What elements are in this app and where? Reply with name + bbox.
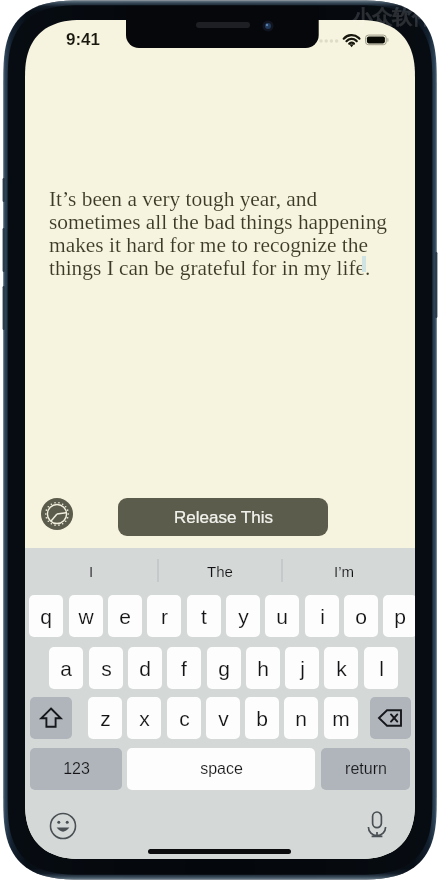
- staticText: It’s been a very tough year, and sometim…: [49, 187, 391, 280]
- button[interactable]: e: [108, 595, 142, 637]
- button[interactable]: b: [245, 697, 279, 739]
- button[interactable]: t: [187, 595, 221, 637]
- staticText: i: [320, 605, 325, 628]
- staticText: y: [238, 605, 249, 628]
- staticText: j: [300, 657, 305, 680]
- staticText: 123: [63, 760, 90, 778]
- staticText: p: [394, 605, 406, 628]
- button[interactable]: v: [206, 697, 240, 739]
- staticText: e: [119, 605, 131, 628]
- staticText: t: [201, 605, 207, 628]
- button[interactable]: Shift: [30, 697, 72, 739]
- button[interactable]: Release This: [118, 498, 328, 536]
- staticText: m: [332, 707, 350, 730]
- staticText: space: [200, 760, 243, 778]
- button[interactable]: I: [46, 550, 136, 592]
- button[interactable]: h: [246, 647, 280, 689]
- staticText: h: [257, 657, 269, 680]
- staticText: c: [179, 707, 190, 730]
- button[interactable]: Dictation: [361, 808, 393, 840]
- staticText: v: [218, 707, 229, 730]
- button[interactable]: y: [226, 595, 260, 637]
- staticText: 小众软件: [352, 5, 432, 30]
- staticText: The: [207, 563, 233, 580]
- staticText: q: [40, 605, 52, 628]
- staticText: Release This: [174, 508, 273, 527]
- button[interactable]: k: [324, 647, 358, 689]
- button[interactable]: s: [89, 647, 123, 689]
- button[interactable]: Settings: [41, 498, 73, 530]
- staticText: n: [295, 707, 307, 730]
- button[interactable]: Backspace: [370, 697, 411, 739]
- button[interactable]: d: [128, 647, 162, 689]
- button[interactable]: m: [324, 697, 358, 739]
- button[interactable]: c: [167, 697, 201, 739]
- staticText: z: [100, 707, 111, 730]
- button[interactable]: x: [127, 697, 161, 739]
- staticText: g: [218, 657, 230, 680]
- button[interactable]: f: [167, 647, 201, 689]
- button[interactable]: o: [344, 595, 378, 637]
- button[interactable]: l: [364, 647, 398, 689]
- staticText: x: [139, 707, 150, 730]
- button[interactable]: Emoji: [47, 810, 79, 842]
- staticText: l: [379, 657, 384, 680]
- staticText: I’m: [334, 563, 354, 580]
- button[interactable]: u: [265, 595, 299, 637]
- button[interactable]: q: [29, 595, 63, 637]
- staticText: a: [60, 657, 72, 680]
- staticText: r: [161, 605, 168, 628]
- button[interactable]: i: [305, 595, 339, 637]
- staticText: w: [78, 605, 94, 628]
- staticText: k: [336, 657, 347, 680]
- button[interactable]: I’m: [299, 550, 389, 592]
- button[interactable]: space: [127, 748, 315, 790]
- staticText: f: [181, 657, 187, 680]
- button[interactable]: a: [49, 647, 83, 689]
- button[interactable]: j: [285, 647, 319, 689]
- staticText: b: [256, 707, 268, 730]
- button[interactable]: return: [321, 748, 410, 790]
- staticText: I: [89, 563, 94, 580]
- staticText: u: [276, 605, 288, 628]
- button[interactable]: w: [69, 595, 103, 637]
- staticText: return: [345, 760, 387, 778]
- button[interactable]: n: [284, 697, 318, 739]
- staticText: o: [355, 605, 367, 628]
- staticText: 9:41: [66, 30, 101, 49]
- staticText: s: [101, 657, 112, 680]
- button[interactable]: p: [383, 595, 415, 637]
- button[interactable]: 123: [30, 748, 122, 790]
- staticText: d: [139, 657, 151, 680]
- button[interactable]: r: [147, 595, 181, 637]
- button[interactable]: g: [207, 647, 241, 689]
- button[interactable]: z: [88, 697, 122, 739]
- button[interactable]: The: [175, 550, 265, 592]
